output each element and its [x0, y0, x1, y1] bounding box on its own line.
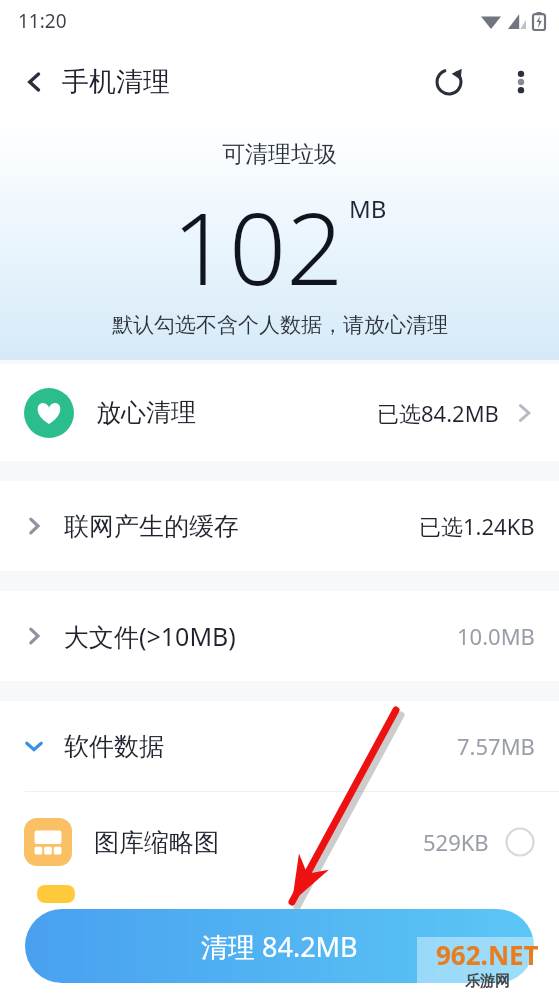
- button[interactable]: 图库缩略图: [0, 792, 559, 892]
- button[interactable]: 联网产生的缓存: [0, 481, 559, 571]
- button[interactable]: More options: [497, 58, 545, 106]
- staticText: 已选1.24KB: [419, 511, 535, 541]
- button[interactable]: 清理 84.2MB: [25, 909, 534, 983]
- button[interactable]: 软件数据: [0, 701, 559, 791]
- staticText: 联网产生的缓存: [64, 511, 239, 542]
- staticText: 软件数据: [64, 731, 164, 762]
- staticText: 图库缩略图: [94, 827, 219, 858]
- staticText: 乐游网: [465, 972, 510, 989]
- staticText: MB: [349, 192, 387, 225]
- staticText: 529KB: [423, 827, 489, 857]
- button[interactable]: 大文件(>10MB): [0, 591, 559, 681]
- staticText: 放心清理: [96, 397, 196, 428]
- staticText: 清理 84.2MB: [201, 928, 358, 965]
- staticText: 102: [172, 178, 344, 314]
- staticText: 10.0MB: [457, 621, 535, 651]
- staticText: 手机清理: [62, 65, 170, 99]
- staticText: 11:20: [18, 8, 67, 34]
- staticText: 7.57MB: [457, 731, 535, 761]
- other: Back: [24, 71, 46, 93]
- button[interactable]: Back: [24, 65, 178, 99]
- staticText: 默认勾选不含个人数据，请放心清理: [112, 312, 448, 338]
- button[interactable]: 放心清理: [0, 364, 559, 461]
- staticText: 已选84.2MB: [377, 398, 499, 428]
- button[interactable]: Refresh: [425, 58, 473, 106]
- staticText: 可清理垃圾: [222, 140, 337, 169]
- staticText: 大文件(>10MB): [64, 619, 236, 653]
- staticText: 962.NET: [436, 937, 539, 972]
